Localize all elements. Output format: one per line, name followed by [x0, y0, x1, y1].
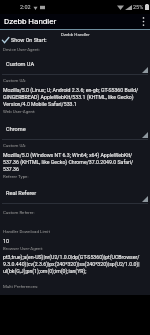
staticText: Custom UA:	[3, 78, 27, 83]
staticText: Real Referer	[6, 190, 37, 197]
button[interactable]: More options	[136, 14, 150, 29]
staticText: Mozilla/5.0 (Windows NT 6.3; Win64; x64)…	[3, 152, 147, 172]
staticText: pt3,true);a(en-US)|nr(U2/1.0.0|dp(GT-S53…	[3, 254, 147, 274]
staticText: 10	[3, 238, 10, 244]
staticText: 25%	[133, 4, 144, 10]
staticText: Browser User-Agent:	[3, 246, 43, 251]
staticText: Custom UA:	[3, 143, 27, 148]
staticText: Multi Preferences:	[3, 284, 39, 289]
staticText: Dzebb Handler	[4, 17, 57, 26]
button[interactable]: Show On Start:	[0, 35, 150, 45]
button[interactable]: Custom UA	[0, 56, 150, 76]
staticText: Custom UA	[6, 61, 35, 68]
staticText: Dzebb Handler	[61, 32, 90, 37]
button[interactable]: Real Referer	[0, 185, 150, 205]
button[interactable]: Chrome	[0, 121, 150, 141]
staticText: Show On Start:	[11, 37, 47, 43]
staticText: Custom Referer:	[3, 210, 35, 215]
button[interactable]: Dzebb Handler	[0, 30, 150, 38]
staticText: Web User-Agent:	[3, 109, 36, 114]
staticText: Device User-Agent:	[3, 47, 40, 52]
staticText: Referer Type:	[3, 174, 29, 179]
staticText: Mozilla/5.0 (Linux; U; Android 2.3.6; en…	[3, 87, 147, 107]
staticText: Handler Download Limit	[3, 229, 50, 234]
staticText: Chrome	[6, 126, 26, 133]
staticText: 2:02	[20, 4, 31, 10]
